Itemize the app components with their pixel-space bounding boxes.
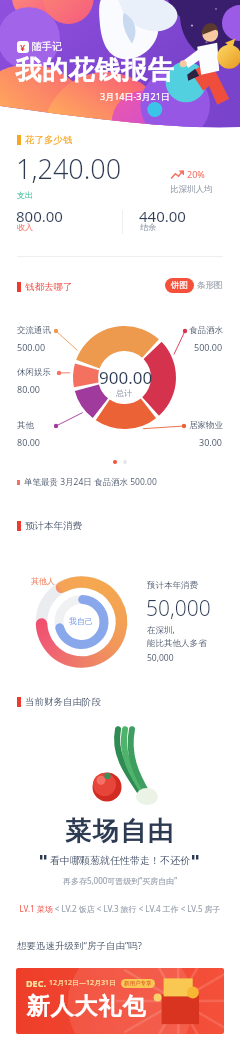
button[interactable]: 条形图 bbox=[195, 278, 225, 293]
staticText: 钱都去哪了 bbox=[25, 281, 73, 293]
staticText: 50,000 bbox=[147, 652, 174, 664]
staticText: LV.1 菜场 < LV.2 饭店 < LV.3 旅行 < LV.4 工作 < … bbox=[0, 903, 240, 914]
staticText: 休闲娱乐 bbox=[17, 367, 51, 378]
staticText: 我自己 bbox=[69, 616, 93, 626]
staticText: 在深圳, bbox=[147, 624, 175, 636]
staticText: 1,240.00 bbox=[16, 150, 122, 187]
button[interactable]: 饼图 bbox=[165, 278, 194, 293]
staticText: 50,000 bbox=[146, 594, 211, 623]
staticText: 饼图 bbox=[171, 280, 188, 291]
staticText: 预计本年消费 bbox=[25, 520, 82, 532]
staticText: ¥ bbox=[20, 41, 26, 53]
staticText: DEC. bbox=[26, 977, 46, 989]
staticText: 条形图 bbox=[197, 280, 223, 291]
staticText: 其他 bbox=[17, 420, 34, 431]
staticText: 收入 bbox=[17, 222, 33, 232]
staticText: 菜场自由 bbox=[0, 815, 240, 848]
staticText: 随手记 bbox=[32, 40, 62, 53]
staticText: 900.00 bbox=[99, 366, 153, 389]
staticText: 500.00 bbox=[194, 341, 223, 353]
staticText: 新人大礼包 bbox=[26, 992, 146, 1021]
staticText: 其他人 bbox=[31, 576, 55, 586]
staticText: 比深圳人均 bbox=[170, 184, 213, 195]
staticText: 500.00 bbox=[17, 341, 46, 353]
staticText: 80.00 bbox=[17, 383, 41, 395]
staticText: 结余 bbox=[140, 222, 156, 232]
staticText: 再多存5,000可晋级到“买房自由” bbox=[0, 875, 240, 886]
staticText: 3月14日-3月21日 bbox=[100, 90, 170, 102]
staticText: 单笔最贵 3月24日 食品酒水 500.00 bbox=[24, 476, 157, 488]
staticText: 想要迅速升级到“房子自由”吗? bbox=[17, 939, 142, 952]
staticText: 当前财务自由阶段 bbox=[25, 696, 101, 708]
staticText: 看中哪颗葱就任性带走！不还价 bbox=[50, 854, 190, 867]
staticText: 能比其他人多省 bbox=[147, 638, 207, 649]
button[interactable]: ¥ bbox=[17, 40, 62, 53]
staticText: 30.00 bbox=[199, 436, 223, 448]
staticText: 80.00 bbox=[17, 436, 41, 448]
staticText: 20% bbox=[187, 168, 205, 180]
staticText: 交流通讯 bbox=[17, 325, 51, 336]
staticText: 居家物业 bbox=[189, 420, 223, 431]
staticText: 花了多少钱 bbox=[25, 134, 73, 146]
staticText: 预计本年消费 bbox=[147, 580, 198, 591]
staticText: 12月12日—12月31日 bbox=[49, 978, 117, 988]
staticText: 我的花钱报告 bbox=[15, 54, 174, 87]
staticText: 支出 bbox=[17, 190, 33, 200]
staticText: 总计 bbox=[116, 388, 132, 398]
button[interactable]: DEC. bbox=[16, 968, 224, 1034]
staticText: 800.00 bbox=[16, 206, 63, 226]
staticText: 新用户专享 bbox=[124, 980, 152, 987]
staticText: 440.00 bbox=[139, 206, 186, 226]
staticText: 食品酒水 bbox=[189, 325, 223, 336]
